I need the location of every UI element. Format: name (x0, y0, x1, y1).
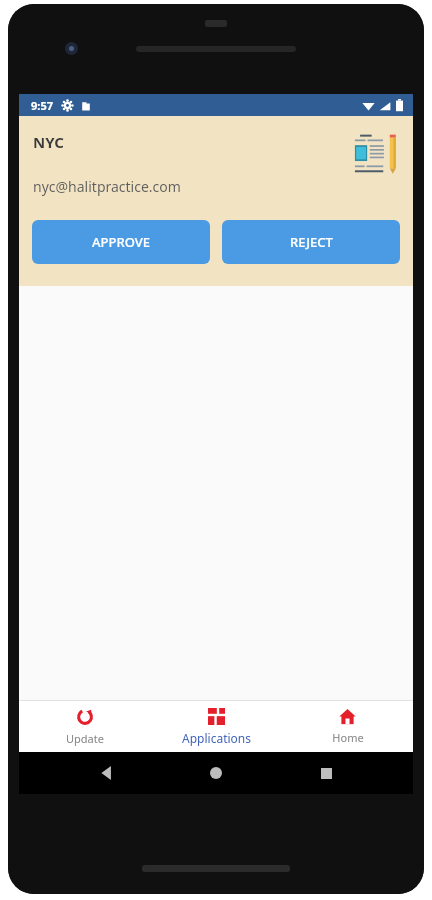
staticText: Update (66, 731, 104, 746)
staticText: Applications (182, 730, 251, 746)
button[interactable]: APPROVE (32, 220, 210, 264)
button[interactable]: Home (194, 752, 238, 794)
staticText: Home (332, 730, 364, 745)
staticText: nyc@halitpractice.com (33, 177, 181, 196)
button[interactable]: Home (282, 701, 413, 752)
staticText: NYC (33, 132, 64, 152)
button[interactable]: Back (85, 752, 129, 794)
button[interactable]: Recent apps (304, 752, 348, 794)
staticText: REJECT (290, 233, 333, 251)
button[interactable]: Update (19, 701, 151, 752)
staticText: APPROVE (92, 233, 150, 251)
button[interactable]: Applications (151, 701, 282, 752)
staticText: 9:57 (31, 98, 53, 113)
button[interactable]: REJECT (222, 220, 400, 264)
